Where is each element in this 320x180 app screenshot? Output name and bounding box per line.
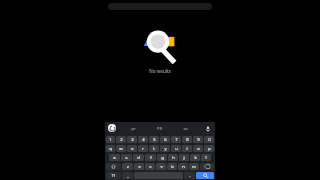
button[interactable]: 1 [106,136,115,143]
button[interactable]: k [190,154,200,161]
staticText: q [109,146,112,152]
button[interactable]: 3 [127,136,137,143]
button[interactable]: d [133,154,144,161]
button[interactable]: ?1 [106,172,121,179]
staticText: n [182,164,185,170]
staticText: e [131,146,134,152]
button[interactable]: Google [108,124,116,132]
staticText: w [119,146,123,152]
button[interactable]: u [171,145,181,152]
staticText: l [205,155,207,161]
staticText: 3 [131,137,134,143]
staticText: h [172,155,175,161]
staticText: 0 [208,137,211,143]
button[interactable]: 4 [138,136,148,143]
staticText: r [142,146,144,152]
staticText: y [164,146,167,152]
staticText: j [183,155,185,161]
staticText: i [186,146,188,152]
button[interactable]: z [122,163,133,170]
button[interactable]: f [145,154,156,161]
button[interactable]: w [116,145,126,152]
button[interactable]: o [193,145,203,152]
staticText: xx [183,126,188,131]
staticText: a [113,155,116,161]
staticText: k [194,155,197,161]
button[interactable]: 0 [204,136,214,143]
button[interactable]: 6 [160,136,170,143]
button[interactable]: 7 [171,136,181,143]
button[interactable]: c [145,163,155,170]
staticText: 4 [142,137,145,143]
button[interactable]: b [167,163,177,170]
staticText: g [161,155,164,161]
staticText: f [150,155,152,161]
button[interactable]: h [168,154,178,161]
button[interactable]: Shift [106,163,121,170]
staticText: d [137,155,140,161]
button[interactable]: 8 [182,136,192,143]
button[interactable]: j [179,154,189,161]
staticText: PR [157,126,162,131]
staticText: . [189,173,191,179]
button[interactable]: 5 [149,136,159,143]
button[interactable]: v [156,163,166,170]
button[interactable]: e [127,145,137,152]
button[interactable]: g [157,154,167,161]
staticText: b [171,164,174,170]
staticText: x [138,164,141,170]
staticText: ?1 [111,173,116,179]
staticText: No results [149,68,171,74]
staticText: m [192,164,196,170]
staticText: 9 [197,137,200,143]
staticText: 7 [175,137,178,143]
staticText: t [153,146,155,152]
staticText: 6 [164,137,167,143]
button[interactable]: a [109,154,120,161]
staticText: 5 [153,137,156,143]
staticText: o [197,146,200,152]
staticText: 1 [109,137,112,143]
staticText: c [149,164,152,170]
button[interactable]: Backspace [200,163,214,170]
button[interactable]: Search [196,172,214,179]
button[interactable]: s [121,154,132,161]
button[interactable]: m [189,163,199,170]
button[interactable]: n [178,163,188,170]
button[interactable]: Voice input [203,124,212,133]
button[interactable]: x [134,163,144,170]
staticText: , [127,173,129,179]
button[interactable]: t [149,145,159,152]
staticText: v [160,164,163,170]
staticText: 2 [120,137,123,143]
staticText: pr [131,126,136,131]
button[interactable]: 9 [193,136,203,143]
button[interactable]: l [201,154,211,161]
button[interactable]: p [204,145,214,152]
button[interactable]: q [106,145,115,152]
button[interactable]: y [160,145,170,152]
staticText: 8 [186,137,189,143]
button[interactable]: 2 [116,136,126,143]
button[interactable]: . [184,172,195,179]
staticText: u [175,146,178,152]
staticText: s [125,155,128,161]
button[interactable]: r [138,145,148,152]
staticText: p [208,146,211,152]
button[interactable]: i [182,145,192,152]
button[interactable]: , [122,172,133,179]
staticText: z [127,164,129,170]
